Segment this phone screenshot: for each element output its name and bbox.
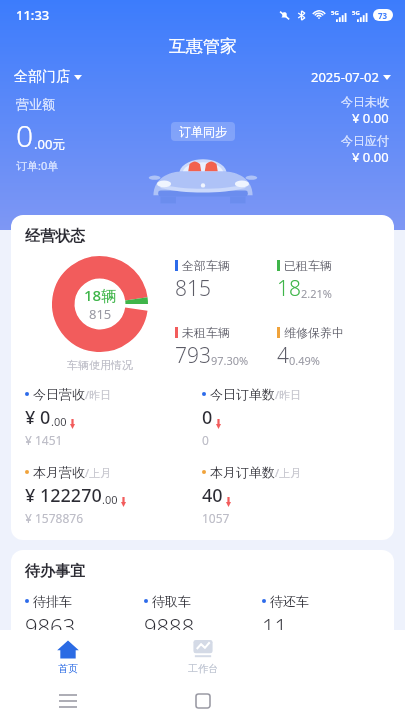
staticText: ¥ 0 — [25, 405, 51, 430]
staticText: 0 — [202, 405, 213, 430]
staticText: 9863 — [25, 611, 76, 641]
staticText: 18辆 — [84, 285, 117, 305]
staticText: .00 — [51, 414, 67, 429]
staticText: 未租车辆 — [182, 325, 230, 340]
staticText: 5G — [352, 9, 360, 17]
staticText: /上月 — [85, 465, 112, 480]
button[interactable]: 今日订单数 — [202, 386, 380, 448]
button[interactable]: 2025-07-02 — [311, 65, 391, 89]
staticText: 0 — [16, 115, 34, 156]
staticText: .00 — [102, 492, 118, 507]
staticText: ¥ 122270 — [25, 483, 102, 508]
staticText: 今日未收 — [341, 94, 389, 109]
staticText: 2.21% — [301, 286, 332, 301]
staticText: 订单同步 — [179, 124, 227, 139]
staticText: 0 — [202, 432, 209, 448]
button[interactable]: 维修保养中 — [277, 325, 380, 370]
staticText: 工作台 — [188, 662, 218, 675]
staticText: 经营状态 — [25, 227, 85, 246]
staticText: 订单:0单 — [16, 158, 59, 173]
button[interactable]: Recent apps — [55, 688, 81, 714]
staticText: 已租车辆 — [284, 258, 332, 273]
button[interactable]: 工作台 — [135, 632, 270, 680]
staticText: 9888 — [144, 611, 195, 641]
button[interactable]: 本月订单数 — [202, 464, 380, 526]
staticText: 11:33 — [16, 6, 50, 24]
staticText: 11 — [262, 611, 288, 641]
button[interactable]: 全部门店 — [14, 65, 82, 89]
staticText: 全部门店 — [14, 68, 70, 86]
staticText: 2025-07-02 — [311, 68, 379, 86]
staticText: ¥ 1451 — [25, 432, 63, 448]
staticText: 互惠管家 — [169, 36, 237, 57]
staticText: .00元 — [34, 135, 66, 153]
staticText: 待排车 — [33, 593, 72, 609]
staticText: 营业额 — [16, 96, 55, 112]
staticText: 40 — [202, 483, 223, 508]
staticText: 0.49% — [289, 353, 320, 368]
staticText: 今日应付 — [341, 133, 389, 148]
staticText: ¥ 0.00 — [352, 109, 389, 127]
staticText: 815 — [89, 305, 112, 323]
staticText: 18 — [277, 274, 301, 303]
button[interactable]: 首页 — [0, 632, 135, 680]
staticText: /上月 — [275, 465, 302, 480]
button[interactable]: 待排车 — [25, 593, 144, 641]
staticText: 待办事宜 — [25, 562, 85, 581]
staticText: 车辆使用情况 — [67, 358, 133, 372]
staticText: 5G — [331, 9, 339, 17]
staticText: 维修保养中 — [284, 325, 344, 340]
staticText: 4 — [277, 341, 289, 370]
button[interactable]: Home — [190, 688, 216, 714]
staticText: 1057 — [202, 510, 230, 526]
staticText: 本月订单数 — [210, 464, 275, 480]
button[interactable]: 全部车辆 — [175, 258, 277, 303]
staticText: 待还车 — [270, 593, 309, 609]
staticText: 97.30% — [211, 353, 249, 368]
staticText: 本月营收 — [33, 464, 85, 480]
button[interactable]: 本月营收 — [25, 464, 202, 526]
button[interactable]: 未租车辆 — [175, 325, 277, 370]
button[interactable]: 待取车 — [144, 593, 262, 641]
staticText: 全部车辆 — [182, 258, 230, 273]
staticText: 首页 — [58, 662, 78, 675]
button[interactable]: 今日营收 — [25, 386, 202, 448]
staticText: 今日订单数 — [210, 386, 275, 402]
button[interactable]: 已租车辆 — [277, 258, 380, 303]
staticText: 815 — [175, 274, 211, 303]
staticText: 793 — [175, 341, 211, 370]
button[interactable]: 待还车 — [262, 593, 380, 641]
staticText: 今日营收 — [33, 386, 85, 402]
staticText: ¥ 0.00 — [352, 148, 389, 166]
staticText: /昨日 — [275, 387, 302, 402]
staticText: 73 — [378, 10, 388, 21]
staticText: 待取车 — [152, 593, 191, 609]
staticText: /昨日 — [85, 387, 112, 402]
staticText: ¥ 1578876 — [25, 510, 84, 526]
